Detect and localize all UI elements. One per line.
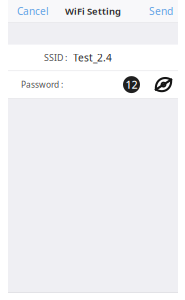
staticText: Test_2.4 — [73, 51, 112, 64]
staticText: Password : — [21, 79, 63, 90]
staticText: SSID : — [44, 52, 67, 64]
staticText: Cancel — [17, 4, 49, 18]
button[interactable]: Cancel — [8, 0, 57, 23]
staticText: Send — [149, 4, 173, 18]
button[interactable]: Show password — [153, 76, 174, 93]
button[interactable]: Send — [141, 0, 178, 23]
staticText: 12 — [125, 77, 137, 92]
staticText: WiFi Setting — [65, 5, 121, 17]
